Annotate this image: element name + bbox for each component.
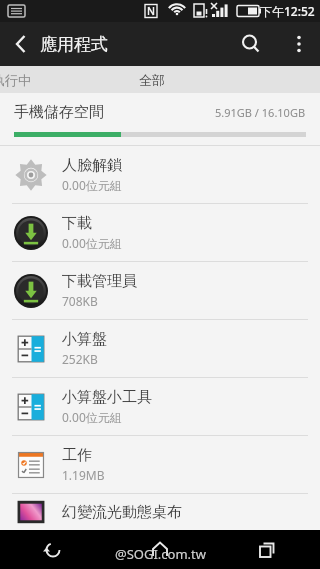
staticText: 人臉解鎖 — [62, 156, 122, 175]
staticText: 0.00位元組 — [62, 235, 122, 251]
button[interactable]: Home — [106, 530, 213, 569]
staticText: 0.00位元組 — [62, 177, 122, 193]
button[interactable]: 下載 — [0, 204, 320, 261]
staticText: 幻變流光動態桌布 — [62, 503, 182, 522]
staticText: 下載管理員 — [62, 272, 137, 291]
staticText: 1.19MB — [62, 467, 105, 483]
staticText: 5.91GB / 16.10GB — [215, 105, 306, 120]
button[interactable]: Back — [0, 24, 40, 64]
staticText: 工作 — [62, 446, 92, 465]
button[interactable]: 下載管理員 — [0, 262, 320, 319]
staticText: 708KB — [62, 293, 98, 309]
button[interactable]: 工作 — [0, 436, 320, 493]
staticText: 執行中 — [0, 72, 31, 88]
staticText: 小算盤小工具 — [62, 388, 152, 407]
staticText: 下載 — [62, 214, 92, 233]
button[interactable]: 人臉解鎖 — [0, 146, 320, 203]
button[interactable]: 小算盤小工具 — [0, 378, 320, 435]
staticText: 手機儲存空間 — [14, 103, 104, 122]
staticText: 應用程式 — [40, 34, 108, 55]
button[interactable]: More options — [278, 23, 320, 65]
staticText: 小算盤 — [62, 330, 107, 349]
staticText: 下午12:52 — [260, 3, 315, 19]
staticText: 全部 — [139, 72, 165, 88]
button[interactable]: 小算盤 — [0, 320, 320, 377]
button[interactable]: Search — [230, 23, 272, 65]
staticText: @SOGI.com.tw — [115, 545, 206, 563]
staticText: 252KB — [62, 351, 98, 367]
button[interactable]: Recent apps — [213, 530, 320, 569]
staticText: 0.00位元組 — [62, 409, 122, 425]
button[interactable]: Back — [0, 530, 106, 569]
button[interactable]: 執行中 — [0, 66, 106, 93]
button[interactable]: 幻變流光動態桌布 — [0, 494, 320, 530]
button[interactable]: 全部 — [106, 66, 213, 93]
